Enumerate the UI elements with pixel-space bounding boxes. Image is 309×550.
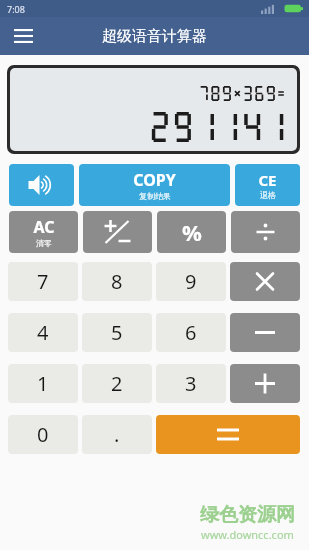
staticText: 3 xyxy=(185,370,197,397)
staticText: 2 xyxy=(111,370,123,397)
button[interactable]: 6 xyxy=(156,313,226,352)
staticText: 1 xyxy=(37,370,49,397)
button[interactable]: 8 xyxy=(82,262,152,301)
staticText: www.downcc.com xyxy=(201,527,294,542)
button[interactable]: Divide xyxy=(231,211,300,253)
button[interactable]: Plus minus xyxy=(83,211,152,253)
staticText: 退格 xyxy=(260,190,276,200)
staticText: 超级语音计算器 xyxy=(102,27,207,46)
button[interactable]: 3 xyxy=(156,364,226,403)
staticText: CE xyxy=(258,170,277,190)
staticText: 绿色资源网 xyxy=(200,503,295,527)
button[interactable]: 1 xyxy=(8,364,78,403)
staticText: COPY xyxy=(133,169,176,191)
button[interactable]: 7 xyxy=(8,262,78,301)
button[interactable]: 4 xyxy=(8,313,78,352)
button[interactable]: . xyxy=(82,415,152,454)
button[interactable]: Minus xyxy=(230,313,300,352)
staticText: 4 xyxy=(37,319,49,346)
staticText: % xyxy=(182,217,202,247)
button[interactable]: 9 xyxy=(156,262,226,301)
button[interactable]: Multiply xyxy=(230,262,300,301)
button[interactable]: Plus xyxy=(230,364,300,403)
button[interactable]: AC xyxy=(9,211,78,253)
staticText: 6 xyxy=(185,319,197,346)
staticText: 复制结果 xyxy=(139,191,171,201)
button[interactable]: 0 xyxy=(8,415,78,454)
staticText: 9 xyxy=(185,268,197,295)
button[interactable]: 2 xyxy=(82,364,152,403)
button[interactable]: Speak result xyxy=(9,164,74,206)
staticText: 7:08 xyxy=(7,3,25,15)
button[interactable]: Equals xyxy=(156,415,300,454)
staticText: 5 xyxy=(111,319,123,346)
staticText: 0 xyxy=(37,421,49,448)
button[interactable]: % xyxy=(157,211,226,253)
staticText: 清零 xyxy=(36,238,52,248)
staticText: . xyxy=(114,421,120,448)
button[interactable]: COPY xyxy=(79,164,230,206)
staticText: 7 xyxy=(37,268,49,295)
button[interactable]: 5 xyxy=(82,313,152,352)
staticText: AC xyxy=(33,216,55,238)
staticText: 8 xyxy=(111,268,123,295)
button[interactable]: Menu xyxy=(8,21,38,51)
button[interactable]: CE xyxy=(235,164,300,206)
